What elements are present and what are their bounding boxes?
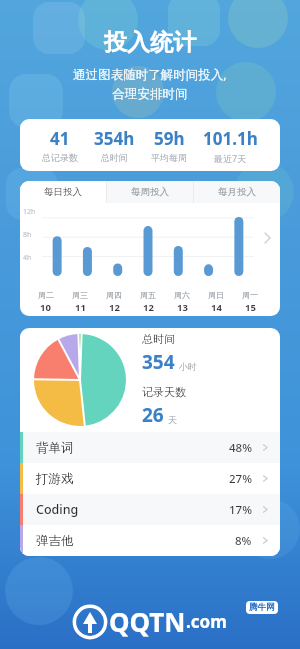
staticText: 打游戏 — [36, 471, 74, 487]
staticText: 354 — [142, 349, 175, 375]
staticText: 总时间 — [101, 152, 128, 163]
staticText: 周六 — [174, 290, 190, 300]
staticText: 12 — [143, 301, 154, 314]
staticText: 15 — [245, 301, 256, 314]
staticText: 周三 — [72, 290, 88, 300]
staticText: 8% — [235, 533, 252, 549]
staticText: 弹吉他 — [36, 533, 74, 549]
staticText: 12h — [23, 207, 36, 217]
staticText: 4h — [23, 253, 32, 263]
staticText: 48% — [229, 440, 252, 456]
staticText: 总记录数 — [42, 152, 78, 163]
staticText: 41 — [50, 127, 70, 150]
staticText: 天 — [168, 414, 177, 425]
staticText: 12 — [109, 301, 120, 314]
staticText: 13 — [177, 301, 188, 314]
staticText: 平均每周 — [151, 152, 187, 163]
staticText: 11 — [75, 301, 86, 314]
staticText: 26 — [142, 402, 164, 428]
staticText: 背单词 — [36, 440, 74, 456]
button[interactable]: 弹吉他 — [20, 525, 280, 556]
staticText: 每日投入 — [44, 186, 82, 198]
button[interactable]: 打游戏 — [20, 463, 280, 494]
staticText: 354h — [94, 127, 135, 150]
staticText: QQTN — [109, 604, 186, 639]
staticText: 总时间 — [142, 332, 175, 346]
staticText: 10 — [40, 301, 51, 314]
staticText: 最近7天 — [214, 152, 247, 164]
staticText: 记录天数 — [142, 385, 186, 399]
staticText: 每月投入 — [218, 186, 256, 198]
staticText: 17% — [229, 502, 252, 518]
button[interactable]: 每日投入 — [20, 181, 106, 203]
staticText: 投入统计 — [104, 28, 196, 57]
button[interactable]: 背单词 — [20, 432, 280, 463]
staticText: Coding — [36, 501, 79, 518]
button[interactable]: 41 — [20, 119, 280, 171]
staticText: .com — [186, 610, 227, 633]
staticText: 周二 — [38, 290, 54, 300]
staticText: 周四 — [106, 290, 122, 300]
staticText: 小时 — [179, 361, 197, 372]
staticText: 通过图表随时了解时间投入, 合理安排时间 — [73, 66, 227, 102]
button[interactable]: 每月投入 — [194, 181, 280, 203]
staticText: 14 — [211, 301, 222, 314]
staticText: 周日 — [208, 290, 224, 300]
staticText: 27% — [229, 471, 252, 487]
button[interactable]: Coding — [20, 494, 280, 525]
staticText: 59h — [154, 127, 185, 150]
staticText: 101.1h — [203, 127, 258, 150]
staticText: 周五 — [140, 290, 156, 300]
button[interactable]: 每周投入 — [107, 181, 193, 203]
staticText: 8h — [23, 230, 32, 240]
staticText: 周一 — [242, 290, 258, 300]
staticText: 腾牛网 — [249, 602, 275, 613]
staticText: 每周投入 — [131, 186, 169, 198]
